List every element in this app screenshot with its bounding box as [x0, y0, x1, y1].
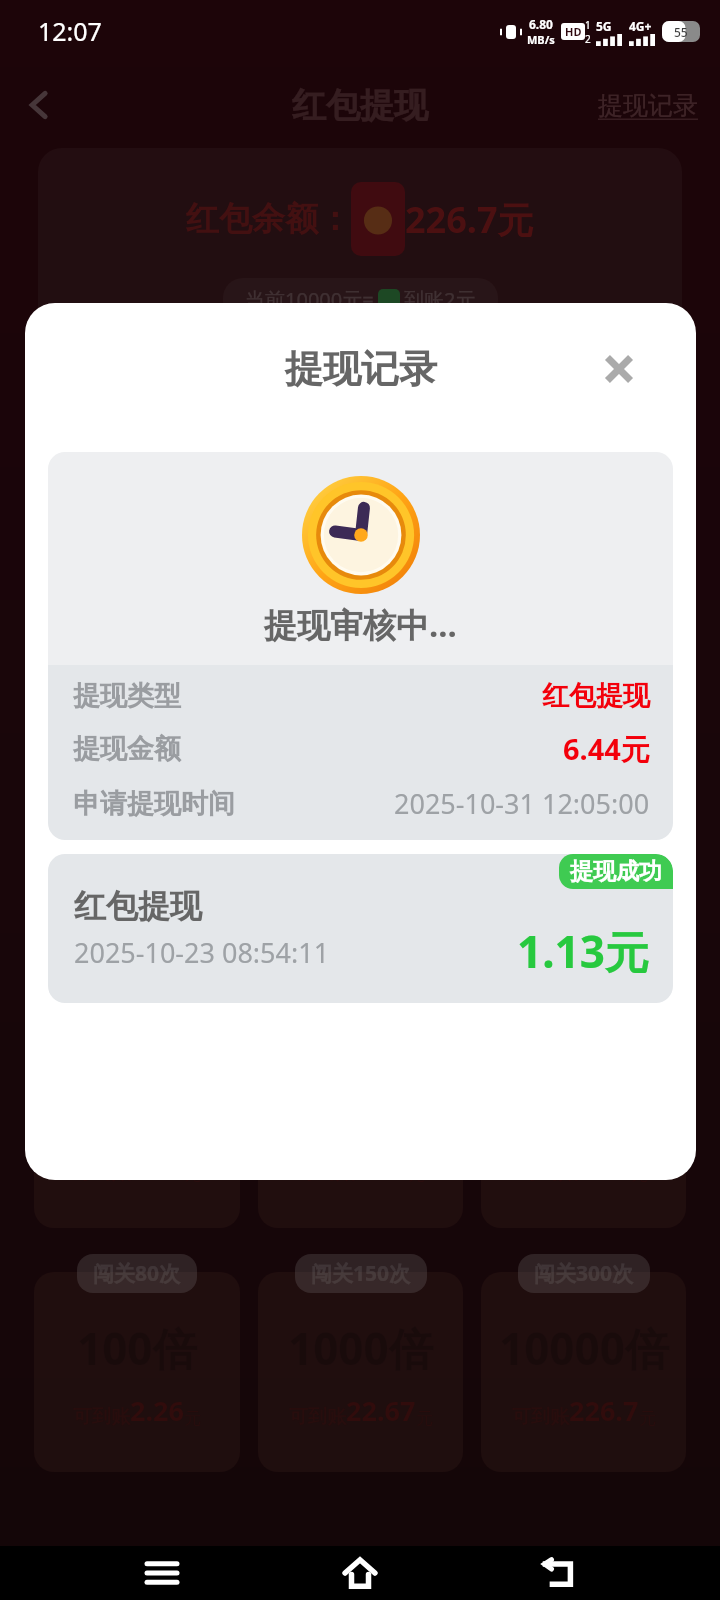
staticText: 当前10000元= — [245, 286, 374, 313]
staticText: 可到账 — [289, 1405, 346, 1429]
button[interactable]: 提现审核中... — [48, 452, 673, 840]
button[interactable]: 关闭 — [594, 344, 644, 394]
staticText: 红包提现 — [74, 886, 202, 926]
staticText: 提现成功 — [570, 857, 662, 886]
staticText: HD — [565, 24, 582, 39]
staticText: 6.44元 — [563, 729, 650, 769]
staticText: 红包余额： — [186, 198, 351, 240]
staticText: 55 — [674, 24, 688, 40]
staticText: 22.67 — [346, 1392, 416, 1429]
staticText: 元 — [184, 1164, 201, 1185]
staticText: MB/s — [527, 32, 555, 47]
button[interactable]: 返回 — [522, 1546, 596, 1600]
staticText: 可到账 — [512, 1405, 569, 1429]
staticText: 226.7 — [569, 1392, 639, 1429]
staticText: 2025-10-31 12:05:00 — [394, 785, 650, 822]
staticText: 1.13元 — [517, 921, 649, 981]
staticText: 可到账 — [297, 1161, 354, 1185]
staticText: 提现记录 — [598, 90, 698, 121]
staticText: 4G+ — [629, 18, 652, 34]
staticText: 可到账 — [73, 1405, 130, 1429]
staticText: 提现类型 — [73, 679, 181, 713]
staticText: 5G — [596, 18, 612, 34]
button[interactable]: 主页 — [323, 1546, 397, 1600]
staticText: 0.05 — [354, 1148, 408, 1185]
staticText: 1.13 — [577, 1148, 631, 1185]
staticText: 0.04 — [130, 1148, 184, 1185]
staticText: 提现金额 — [73, 732, 181, 766]
staticText: 闯关80次 — [93, 1259, 181, 1288]
staticText: 元 — [408, 1164, 425, 1185]
staticText: 提现审核中... — [264, 602, 457, 647]
staticText: 226.7元 — [405, 195, 534, 244]
staticText: 红包提现 — [542, 679, 650, 713]
staticText: 红包提现 — [292, 84, 428, 127]
staticText: 1 — [585, 18, 591, 32]
staticText: 元 — [631, 1164, 648, 1185]
staticText: 12:07 — [38, 14, 102, 48]
staticText: 可到账 — [73, 1161, 130, 1185]
button[interactable]: 红包提现 — [48, 854, 673, 1003]
staticText: 2.26 — [130, 1392, 184, 1429]
staticText: 提现记录 — [285, 345, 437, 393]
button[interactable]: 最近任务 — [125, 1546, 199, 1600]
staticText: 可到账 — [520, 1161, 577, 1185]
staticText: 2 — [585, 32, 591, 46]
staticText: 到账2元 — [404, 286, 476, 313]
staticText: 6.80 — [529, 16, 553, 32]
staticText: 申请提现时间 — [73, 787, 235, 821]
staticText: 闯关300次 — [534, 1259, 634, 1288]
staticText: 2025-10-23 08:54:11 — [74, 934, 330, 971]
staticText: 闯关150次 — [311, 1259, 411, 1288]
